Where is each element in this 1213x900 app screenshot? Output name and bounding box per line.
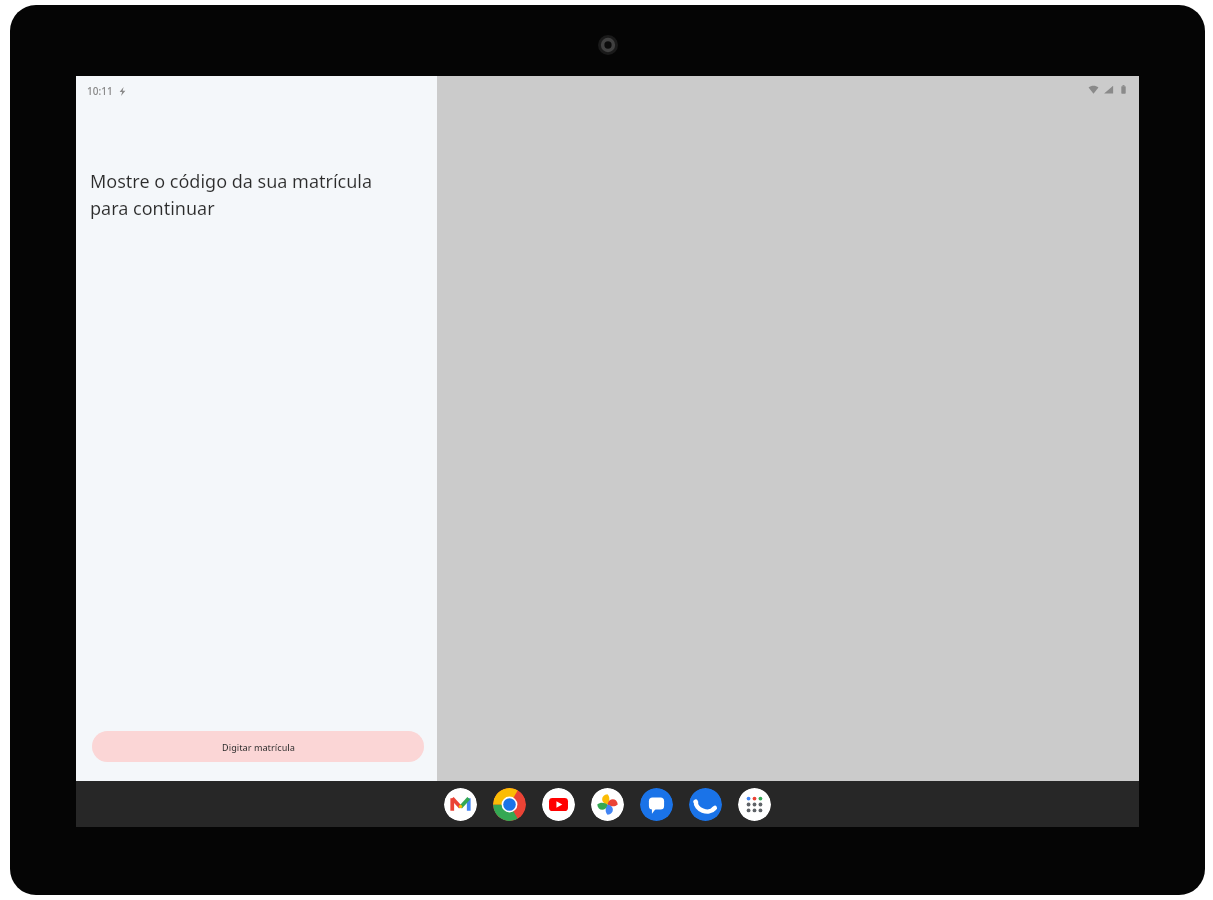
button[interactable]: Gmail bbox=[444, 788, 477, 821]
staticText: Digitar matrícula bbox=[222, 741, 295, 753]
staticText: 10:11 bbox=[87, 84, 113, 98]
button[interactable]: YouTube bbox=[542, 788, 575, 821]
button[interactable]: Messages bbox=[640, 788, 673, 821]
button[interactable]: Chrome bbox=[493, 788, 526, 821]
staticText: Mostre o código da sua matrícula para co… bbox=[90, 169, 420, 220]
button[interactable]: Google Photos bbox=[591, 788, 624, 821]
button[interactable]: Digitar matrícula bbox=[92, 731, 424, 762]
button[interactable]: App drawer bbox=[738, 788, 771, 821]
button[interactable]: Phone bbox=[689, 788, 722, 821]
